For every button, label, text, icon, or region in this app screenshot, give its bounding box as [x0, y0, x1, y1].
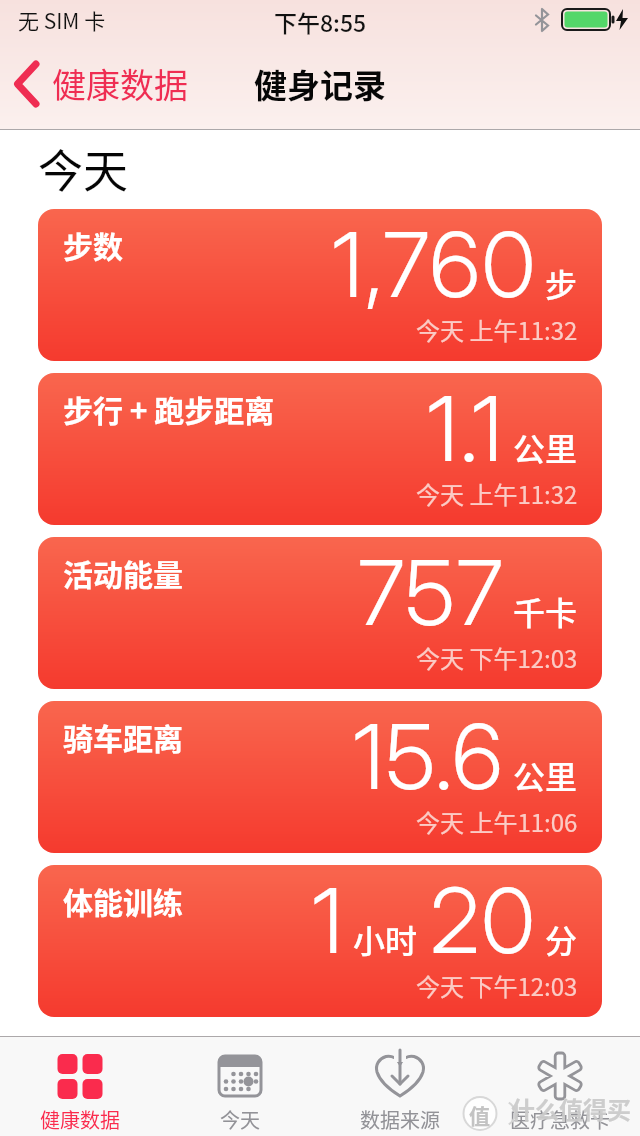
staticText: 今天 下午12:03: [416, 640, 578, 675]
button[interactable]: 体能训练: [38, 865, 602, 1017]
button[interactable]: 步行 + 跑步距离: [38, 373, 602, 525]
button[interactable]: 步数: [38, 209, 602, 361]
staticText: 20: [430, 866, 537, 975]
staticText: 千卡: [513, 588, 578, 634]
button[interactable]: 健康数据: [0, 1036, 160, 1134]
staticText: 今天 下午12:03: [416, 968, 578, 1003]
staticText: 下午8:55: [274, 5, 367, 38]
staticText: 小时: [353, 916, 418, 962]
staticText: 健康数据: [40, 1105, 120, 1134]
button[interactable]: 医疗急救卡: [480, 1036, 640, 1134]
staticText: 值: [469, 1100, 490, 1130]
button[interactable]: 数据来源: [320, 1036, 480, 1134]
staticText: 步: [545, 260, 578, 306]
button[interactable]: 骑车距离: [38, 701, 602, 853]
button[interactable]: 今天: [160, 1036, 320, 1134]
button[interactable]: [14, 62, 40, 106]
staticText: 步数: [63, 223, 123, 266]
staticText: 健身记录: [254, 60, 386, 108]
staticText: 分: [545, 916, 578, 962]
staticText: 1: [312, 866, 345, 975]
staticText: 医疗急救卡: [510, 1105, 610, 1134]
staticText: 活动能量: [63, 551, 183, 594]
staticText: 757: [358, 538, 505, 647]
staticText: 骑车距离: [63, 715, 183, 758]
staticText: 数据来源: [360, 1105, 440, 1134]
staticText: 什么值得买: [511, 1091, 631, 1126]
staticText: 今天 上午11:32: [416, 476, 578, 511]
staticText: 1.1: [427, 374, 505, 483]
staticText: 无 SIM 卡: [18, 5, 106, 35]
staticText: 公里: [513, 424, 578, 470]
staticText: 1,760: [332, 210, 537, 319]
staticText: 步行 + 跑步距离: [63, 387, 275, 430]
staticText: 15.6: [353, 702, 505, 811]
staticText: 今天: [220, 1105, 260, 1134]
staticText: 今天 上午11:06: [416, 804, 578, 839]
staticText: 体能训练: [63, 879, 183, 922]
staticText: 公里: [513, 752, 578, 798]
button[interactable]: 健康数据: [52, 59, 188, 108]
staticText: 今天: [38, 136, 129, 201]
button[interactable]: 活动能量: [38, 537, 602, 689]
staticText: 今天 上午11:32: [416, 312, 578, 347]
